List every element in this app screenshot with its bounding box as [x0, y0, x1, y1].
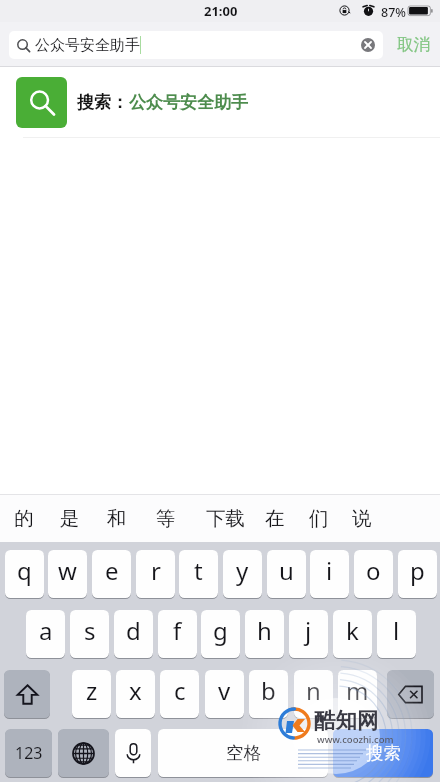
staticText: 们: [309, 506, 329, 531]
staticText: i: [326, 554, 333, 587]
staticText: k: [346, 614, 359, 647]
staticText: p: [410, 554, 425, 587]
button[interactable]: 的: [6, 495, 42, 541]
button[interactable]: t: [179, 550, 218, 598]
button[interactable]: 搜索：: [0, 67, 440, 138]
staticText: n: [306, 674, 321, 707]
button[interactable]: v: [205, 670, 244, 718]
staticText: h: [257, 614, 272, 647]
button[interactable]: k: [333, 610, 372, 658]
button[interactable]: g: [201, 610, 240, 658]
button[interactable]: q: [5, 550, 44, 598]
button[interactable]: j: [289, 610, 328, 658]
button[interactable]: Voice input: [115, 729, 151, 777]
button[interactable]: Backspace: [387, 670, 434, 718]
staticText: d: [126, 614, 141, 647]
button[interactable]: l: [377, 610, 416, 658]
staticText: r: [151, 554, 161, 587]
button[interactable]: x: [116, 670, 155, 718]
staticText: 取消: [397, 34, 430, 55]
staticText: u: [279, 554, 294, 587]
button[interactable]: e: [92, 550, 131, 598]
button[interactable]: 是: [52, 495, 88, 541]
button[interactable]: 说: [344, 495, 380, 541]
staticText: o: [366, 554, 381, 587]
button[interactable]: h: [245, 610, 284, 658]
staticText: s: [84, 614, 96, 647]
staticText: 搜索: [366, 742, 401, 764]
staticText: z: [86, 674, 98, 707]
staticText: 空格: [226, 742, 261, 764]
staticText: 搜索：: [77, 92, 128, 113]
staticText: l: [393, 614, 400, 647]
staticText: e: [105, 554, 119, 587]
staticText: 下载: [206, 506, 245, 531]
button[interactable]: c: [160, 670, 199, 718]
staticText: 公众号安全助手: [129, 92, 248, 113]
staticText: g: [213, 614, 228, 647]
staticText: 和: [107, 506, 127, 531]
staticText: c: [174, 674, 186, 707]
button[interactable]: 和: [99, 495, 135, 541]
button[interactable]: 们: [301, 495, 337, 541]
button[interactable]: Shift: [4, 670, 50, 718]
staticText: www.coozhi.com: [317, 733, 394, 746]
staticText: 公众号安全助手: [35, 36, 140, 55]
button[interactable]: u: [267, 550, 306, 598]
button[interactable]: d: [114, 610, 153, 658]
button[interactable]: f: [158, 610, 197, 658]
staticText: 123: [15, 742, 43, 764]
button[interactable]: Switch keyboard: [58, 729, 109, 777]
button[interactable]: i: [310, 550, 349, 598]
staticText: 的: [14, 506, 34, 531]
staticText: 21:00: [204, 2, 238, 20]
staticText: q: [17, 554, 32, 587]
button[interactable]: w: [48, 550, 87, 598]
button[interactable]: p: [398, 550, 437, 598]
button[interactable]: 123: [5, 729, 52, 777]
button[interactable]: 搜索: [333, 729, 433, 777]
staticText: b: [261, 674, 276, 707]
staticText: a: [39, 614, 53, 647]
staticText: 是: [60, 506, 80, 531]
staticText: x: [129, 674, 142, 707]
staticText: v: [218, 674, 231, 707]
button[interactable]: m: [338, 670, 377, 718]
staticText: 说: [352, 506, 372, 531]
button[interactable]: y: [223, 550, 262, 598]
button[interactable]: z: [72, 670, 111, 718]
staticText: 等: [156, 506, 176, 531]
staticText: m: [346, 674, 369, 707]
button[interactable]: n: [294, 670, 333, 718]
staticText: 87%: [381, 4, 406, 21]
button[interactable]: b: [249, 670, 288, 718]
button[interactable]: 空格: [158, 729, 328, 777]
staticText: y: [236, 554, 249, 587]
staticText: 在: [265, 506, 285, 531]
staticText: f: [173, 614, 182, 647]
staticText: j: [305, 614, 312, 647]
button[interactable]: 取消: [386, 22, 440, 67]
staticText: t: [194, 554, 203, 587]
button[interactable]: s: [70, 610, 109, 658]
staticText: w: [58, 554, 77, 587]
button[interactable]: a: [26, 610, 65, 658]
staticText: 酷知网: [314, 707, 379, 734]
button[interactable]: Clear text: [361, 38, 375, 52]
button[interactable]: o: [354, 550, 393, 598]
button[interactable]: r: [136, 550, 175, 598]
button[interactable]: 在: [257, 495, 293, 541]
button[interactable]: 公众号安全助手: [9, 31, 383, 59]
button[interactable]: 下载: [199, 495, 251, 541]
button[interactable]: 等: [148, 495, 184, 541]
